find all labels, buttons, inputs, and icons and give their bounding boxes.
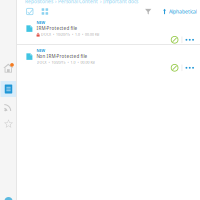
staticText: IRM-Protected file <box>36 25 77 31</box>
staticText: Repositories › Personal Content › Import… <box>25 0 138 5</box>
staticText: DOCX • 10/20/15 • 1.0 • 00.00 KB <box>36 60 94 65</box>
staticText: NEW <box>36 48 45 53</box>
button[interactable]: Grid view <box>40 7 50 16</box>
button[interactable]: NEW <box>17 45 200 72</box>
button[interactable]: Home <box>0 62 16 74</box>
staticText: DOCX • 10/20/15 • 1.0 • 00.00 KB <box>41 32 99 37</box>
button[interactable]: NEW <box>17 17 200 44</box>
button[interactable]: Filter <box>143 7 153 16</box>
button[interactable]: Feeds <box>0 102 16 112</box>
staticText: Non IRM-Protected file <box>36 53 87 59</box>
button[interactable]: Repositories › Personal Content › Import… <box>25 0 138 6</box>
staticText: NEW <box>36 20 45 25</box>
staticText: Alphabetical <box>169 8 197 15</box>
button[interactable]: Documents <box>0 81 16 97</box>
button[interactable]: Select all <box>25 7 35 16</box>
button[interactable]: Favorites <box>0 119 16 129</box>
button[interactable]: Alphabetical <box>163 8 197 15</box>
button[interactable]: New item <box>0 197 16 200</box>
